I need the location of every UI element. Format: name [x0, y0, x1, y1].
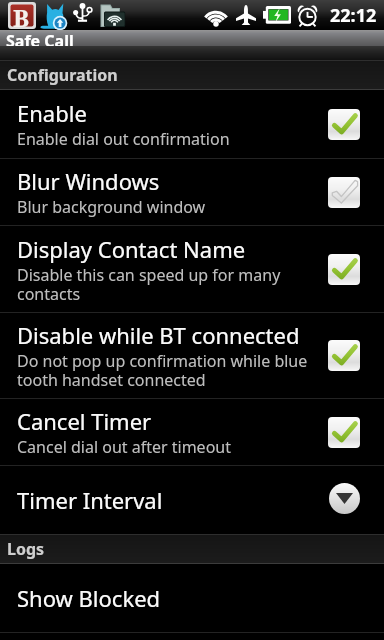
- staticText: Do not pop up confirmation while blue to…: [17, 350, 318, 391]
- staticText: Safe Call: [6, 30, 74, 46]
- staticText: 22:12: [330, 3, 377, 28]
- button[interactable]: Display Contact Name: [0, 226, 384, 312]
- button[interactable]: Expand Timer Interval: [329, 483, 360, 514]
- button[interactable]: Enabled: [328, 254, 360, 285]
- staticText: Cancel Timer: [17, 406, 152, 436]
- staticText: Configuration: [7, 64, 118, 86]
- staticText: Timer Interval: [17, 485, 163, 515]
- button[interactable]: Blur Windows: [0, 159, 384, 225]
- button[interactable]: Cancel Timer: [0, 399, 384, 465]
- button[interactable]: Enabled: [328, 417, 360, 448]
- button[interactable]: Timer Interval: [0, 466, 384, 534]
- button[interactable]: Enabled: [328, 340, 360, 371]
- button[interactable]: Disabled: [328, 177, 360, 208]
- button[interactable]: Enabled: [328, 109, 360, 140]
- staticText: Blur background window: [17, 196, 206, 218]
- staticText: Cancel dial out after timeout: [17, 436, 231, 458]
- staticText: Display Contact Name: [17, 234, 246, 264]
- staticText: Blur Windows: [17, 166, 160, 196]
- button[interactable]: Enable: [0, 90, 384, 158]
- staticText: B: [13, 1, 30, 30]
- button[interactable]: Disable while BT connected: [0, 313, 384, 398]
- staticText: Disable this can speed up for many conta…: [17, 264, 318, 305]
- staticText: Logs: [7, 538, 45, 560]
- staticText: Show Blocked: [17, 583, 161, 613]
- staticText: Enable: [17, 98, 87, 128]
- staticText: Enable dial out confirmation: [17, 128, 230, 150]
- staticText: Disable while BT connected: [17, 320, 300, 350]
- button[interactable]: Show Blocked: [0, 564, 384, 632]
